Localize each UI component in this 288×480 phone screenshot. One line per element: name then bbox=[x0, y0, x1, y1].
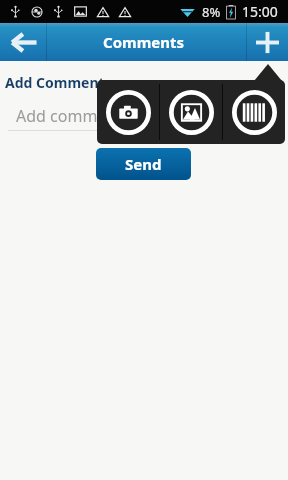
button[interactable]: Send bbox=[96, 148, 191, 180]
button[interactable]: Add comment bbox=[247, 23, 288, 61]
staticText: Add Comment bbox=[5, 73, 105, 92]
staticText: 15:00 bbox=[242, 2, 278, 21]
button[interactable]: Take photo bbox=[97, 80, 159, 144]
staticText: Comments bbox=[103, 32, 185, 52]
staticText: Add comment bbox=[16, 105, 123, 127]
button[interactable]: Scan barcode bbox=[223, 80, 285, 144]
button[interactable]: Back bbox=[0, 23, 46, 61]
staticText: 8% bbox=[202, 3, 221, 21]
button[interactable]: Choose from gallery bbox=[160, 80, 222, 144]
staticText: Send bbox=[125, 154, 162, 174]
